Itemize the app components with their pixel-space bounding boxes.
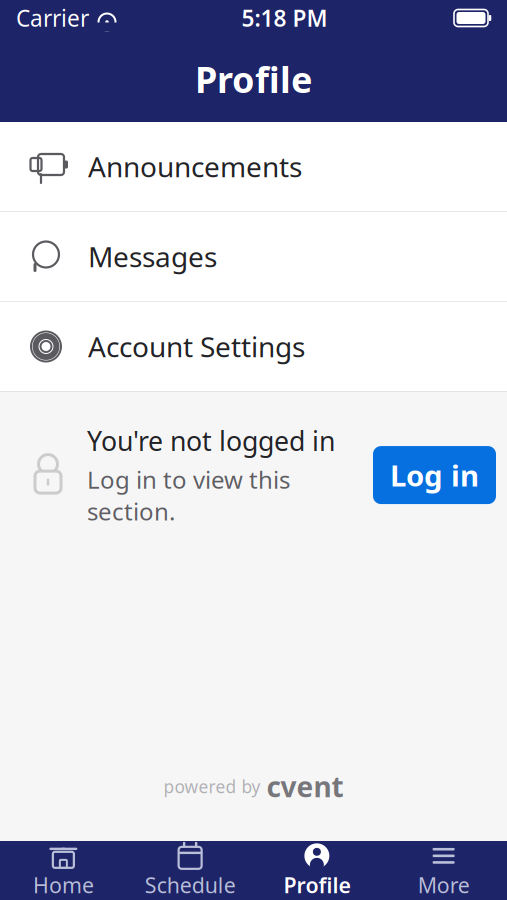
button[interactable]: Messages: [0, 212, 507, 301]
staticText: Messages: [88, 238, 217, 275]
button[interactable]: More: [380, 841, 507, 900]
button[interactable]: Log in: [373, 446, 496, 504]
staticText: Profile: [283, 871, 350, 899]
button[interactable]: Home: [0, 841, 127, 900]
button[interactable]: Announcements: [0, 122, 507, 211]
staticText: Announcements: [88, 148, 302, 185]
staticText: Carrier: [16, 3, 89, 33]
staticText: Schedule: [145, 871, 236, 899]
button[interactable]: Profile: [253, 841, 380, 900]
staticText: Log in to view this section.: [87, 463, 290, 527]
button[interactable]: Account Settings: [0, 302, 507, 391]
staticText: powered by: [163, 775, 260, 798]
staticText: Log in: [390, 456, 479, 495]
staticText: Profile: [195, 55, 312, 103]
staticText: Account Settings: [88, 328, 305, 365]
staticText: More: [418, 871, 470, 899]
staticText: cvent: [266, 768, 343, 805]
staticText: You're not logged in: [87, 423, 335, 458]
button[interactable]: Schedule: [127, 841, 254, 900]
staticText: Home: [33, 871, 94, 899]
staticText: 5:18 PM: [241, 3, 327, 33]
